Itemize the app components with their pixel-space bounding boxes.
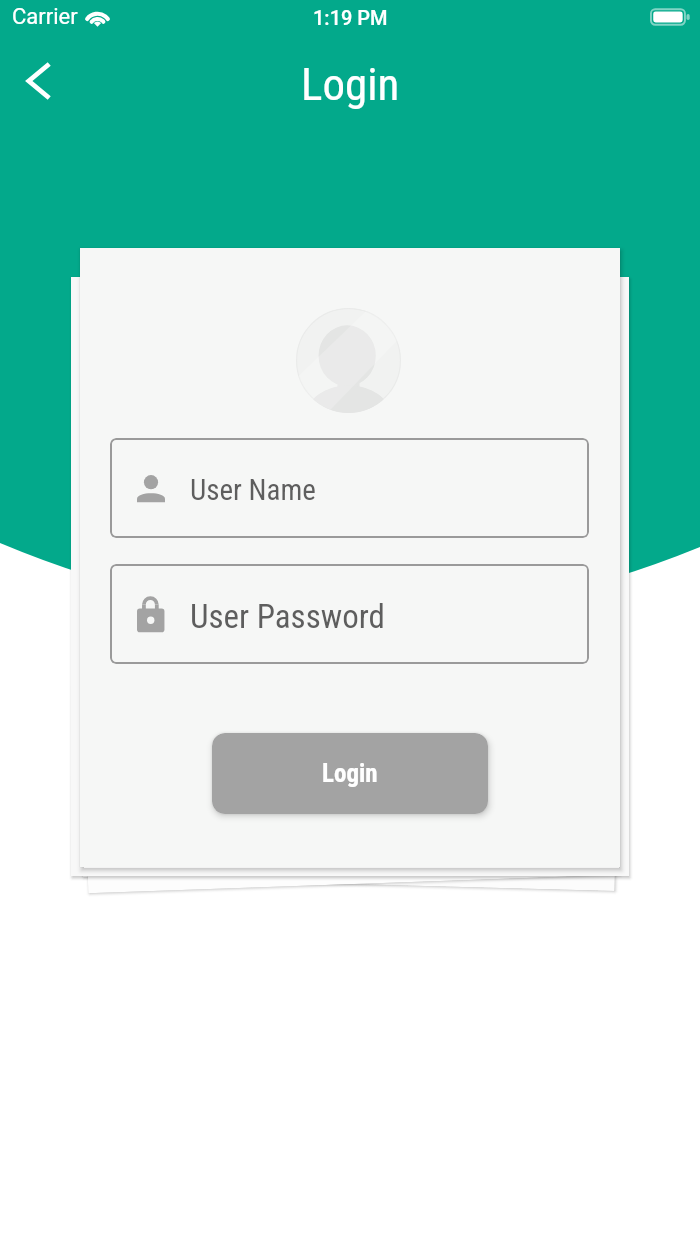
staticText: User Password	[190, 597, 385, 636]
button[interactable]: User Password	[110, 564, 589, 664]
button[interactable]: Login	[212, 733, 488, 814]
staticText: Login	[322, 759, 378, 788]
button[interactable]: User Name	[110, 438, 589, 538]
staticText: Carrier	[12, 4, 78, 30]
staticText: User Name	[190, 473, 316, 507]
button[interactable]: Back	[11, 53, 67, 109]
staticText: Login	[301, 58, 400, 111]
staticText: 1:19 PM	[313, 6, 388, 29]
